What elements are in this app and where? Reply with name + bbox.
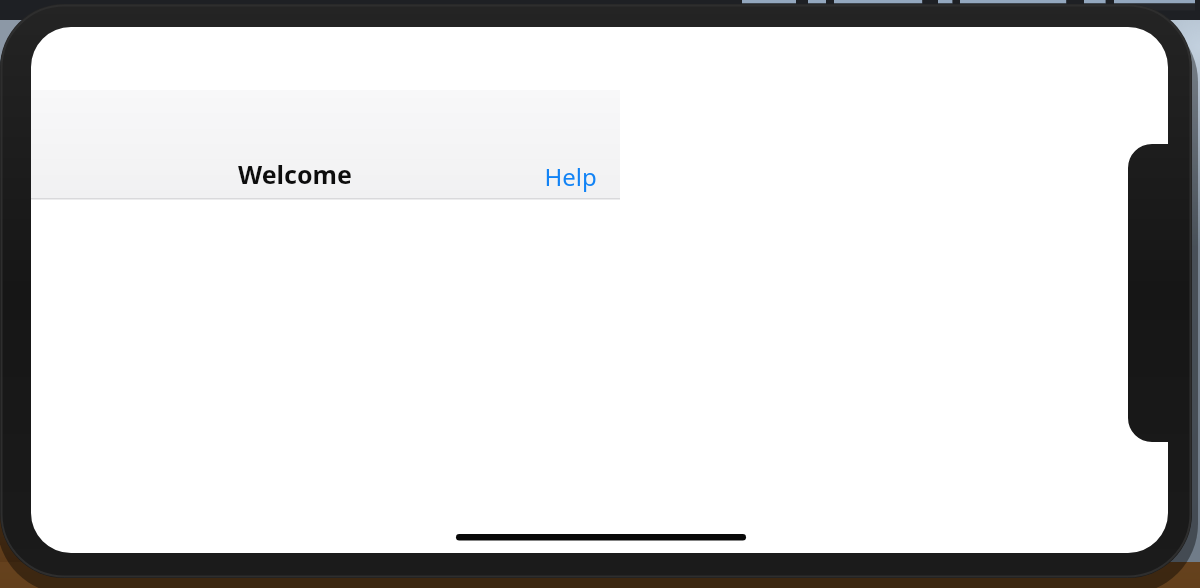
button[interactable]: Home indicator [440, 523, 762, 549]
button[interactable]: Help [534, 151, 612, 199]
